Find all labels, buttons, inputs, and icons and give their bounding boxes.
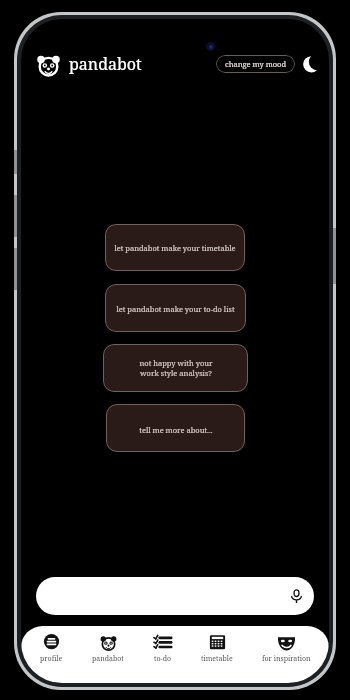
button[interactable]: Voice input: [36, 577, 314, 615]
button[interactable]: let pandabot make your timetable: [105, 224, 245, 271]
button[interactable]: not happy with your work style analysis?: [103, 344, 248, 392]
staticText: pandabot: [92, 654, 124, 664]
staticText: let pandabot make your timetable: [114, 243, 236, 253]
staticText: tell me more about...: [139, 425, 213, 435]
staticText: for inspiration: [262, 654, 311, 664]
staticText: timetable: [201, 654, 233, 664]
button[interactable]: for inspiration: [261, 633, 312, 664]
other: Voice input: [289, 589, 304, 604]
button[interactable]: Dark mode: [302, 55, 321, 74]
button[interactable]: let pandabot make your to-do list: [105, 284, 246, 332]
staticText: change my mood: [225, 59, 286, 69]
button[interactable]: tell me more about...: [106, 404, 245, 452]
button[interactable]: timetable: [200, 633, 234, 664]
staticText: profile: [40, 654, 63, 664]
staticText: pandabot: [69, 53, 142, 75]
staticText: let pandabot make your to-do list: [116, 304, 235, 314]
button[interactable]: change my mood: [216, 55, 295, 73]
staticText: not happy with your work style analysis?: [139, 358, 213, 378]
button[interactable]: profile: [39, 633, 64, 664]
button[interactable]: pandabot: [91, 633, 125, 664]
button[interactable]: pandabot logo: [35, 51, 62, 78]
staticText: to-do: [154, 654, 172, 664]
button[interactable]: to-do: [152, 633, 173, 664]
